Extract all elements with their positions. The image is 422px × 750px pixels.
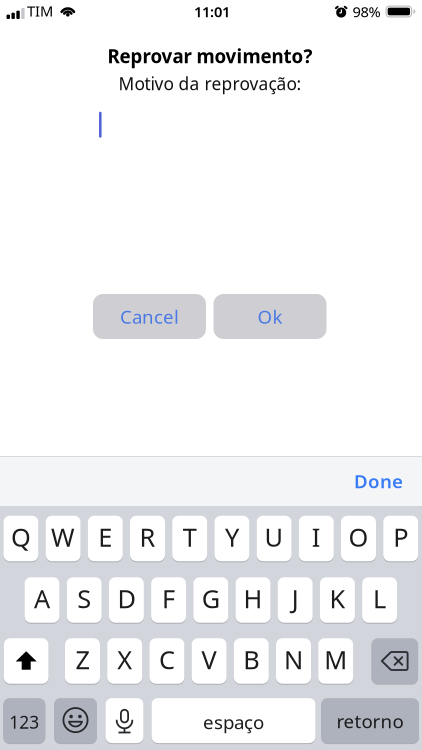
button[interactable]: A	[24, 577, 59, 623]
staticText: X	[117, 643, 132, 676]
button[interactable]: X	[107, 638, 142, 684]
button[interactable]: retorno	[321, 698, 419, 744]
button[interactable]: Q	[3, 515, 38, 562]
staticText: retorno	[336, 709, 403, 733]
button[interactable]: C	[149, 638, 184, 684]
button[interactable]: O	[341, 515, 376, 562]
staticText: O	[348, 520, 368, 554]
staticText: S	[77, 582, 91, 615]
staticText: F	[162, 582, 175, 615]
staticText: Q	[11, 520, 31, 554]
button[interactable]: 123	[3, 698, 45, 744]
staticText: P	[393, 520, 408, 554]
staticText: 98%	[352, 2, 380, 21]
staticText: R	[139, 520, 155, 554]
button[interactable]: Z	[65, 638, 100, 684]
staticText: Reprovar movimento?	[107, 44, 312, 68]
staticText: E	[98, 520, 112, 554]
button[interactable]: L	[362, 577, 397, 623]
staticText: L	[373, 582, 386, 615]
button[interactable]: espaço	[151, 698, 315, 744]
button[interactable]: M	[318, 638, 353, 684]
staticText: Y	[225, 520, 239, 554]
button[interactable]: V	[192, 638, 227, 684]
button[interactable]: F	[151, 577, 186, 623]
button[interactable]: Dictation	[105, 698, 143, 744]
button[interactable]: Y	[214, 515, 249, 562]
button[interactable]: R	[130, 515, 165, 562]
button[interactable]: Shift	[4, 638, 48, 684]
button[interactable]: H	[235, 577, 270, 623]
staticText: K	[329, 582, 345, 615]
staticText: Ok	[257, 304, 282, 329]
button[interactable]: K	[320, 577, 355, 623]
button[interactable]: D	[109, 577, 144, 623]
button[interactable]: U	[257, 515, 292, 562]
staticText: W	[51, 520, 75, 554]
button[interactable]: W	[46, 515, 81, 562]
button[interactable]: T	[172, 515, 207, 562]
staticText: TIM	[27, 1, 53, 21]
staticText: T	[183, 520, 197, 554]
staticText: Done	[354, 469, 403, 493]
staticText: Motivo da reprovação:	[118, 72, 301, 95]
button[interactable]: Ok	[213, 294, 326, 339]
button[interactable]: J	[278, 577, 313, 623]
button[interactable]: Delete	[371, 638, 418, 684]
staticText: I	[312, 520, 321, 554]
button[interactable]: Emoji	[54, 698, 97, 744]
staticText: Cancel	[120, 304, 179, 329]
button[interactable]: S	[67, 577, 102, 623]
staticText: A	[34, 582, 50, 615]
button[interactable]: I	[299, 515, 334, 562]
button[interactable]: E	[88, 515, 123, 562]
staticText: M	[324, 643, 347, 676]
staticText: D	[117, 582, 135, 615]
button[interactable]: G	[193, 577, 228, 623]
button[interactable]: B	[234, 638, 269, 684]
staticText: 11:01	[194, 2, 230, 21]
staticText: 123	[9, 711, 39, 734]
button[interactable]: Cancel	[93, 294, 206, 339]
button[interactable]: Done	[354, 469, 422, 493]
button[interactable]: P	[383, 515, 418, 562]
staticText: espaço	[203, 710, 264, 734]
staticText: J	[292, 582, 299, 615]
staticText: U	[265, 520, 284, 554]
staticText: Z	[75, 643, 89, 676]
staticText: G	[202, 582, 220, 615]
staticText: N	[284, 643, 303, 676]
staticText: C	[159, 643, 175, 676]
staticText: H	[243, 582, 262, 615]
staticText: B	[243, 643, 259, 676]
staticText: V	[202, 643, 217, 676]
button[interactable]: N	[276, 638, 311, 684]
